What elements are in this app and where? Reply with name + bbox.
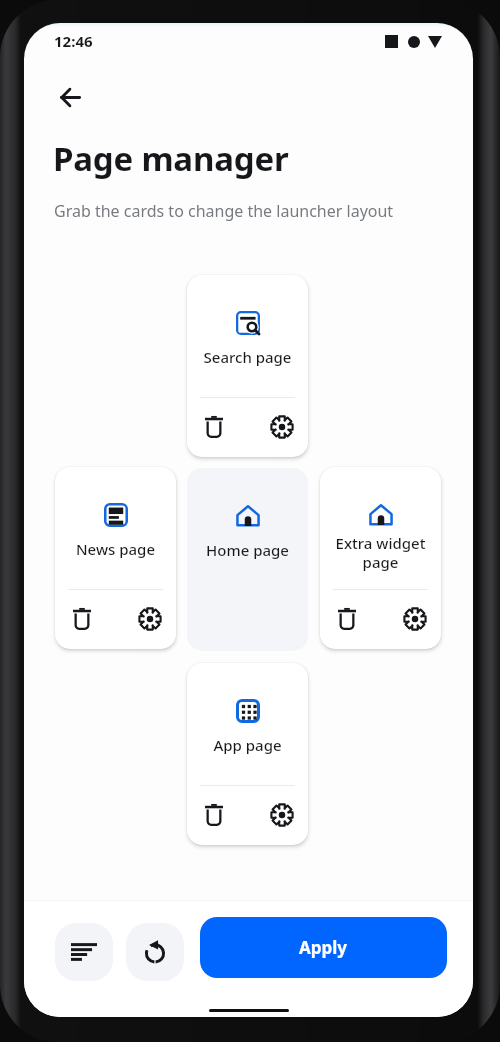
staticText: 12:46 (54, 31, 93, 51)
button[interactable]: Reset (126, 923, 184, 981)
button[interactable]: App page (187, 663, 308, 845)
button[interactable]: Home page (187, 468, 308, 651)
staticText: App page (187, 735, 308, 755)
button[interactable]: News page (55, 467, 176, 649)
button[interactable]: Search page (187, 275, 308, 457)
button[interactable]: Settings (129, 598, 171, 640)
button[interactable]: Delete (64, 601, 100, 637)
button[interactable]: Delete (196, 409, 232, 445)
button[interactable]: Settings (261, 406, 303, 448)
staticText: Extra widget page (320, 533, 441, 572)
staticText: Apply (299, 936, 348, 959)
button[interactable]: Sort (55, 923, 113, 981)
button[interactable]: Settings (394, 598, 436, 640)
staticText: Page manager (53, 136, 289, 181)
staticText: News page (55, 539, 176, 559)
staticText: Grab the cards to change the launcher la… (54, 200, 394, 222)
button[interactable]: Settings (261, 794, 303, 836)
button[interactable]: Apply (200, 917, 447, 978)
button[interactable]: Extra widget page (320, 467, 441, 649)
button[interactable]: Delete (329, 601, 365, 637)
button[interactable]: Back (47, 74, 93, 120)
staticText: Home page (187, 540, 308, 560)
button[interactable]: Delete (196, 797, 232, 833)
staticText: Search page (187, 347, 308, 367)
